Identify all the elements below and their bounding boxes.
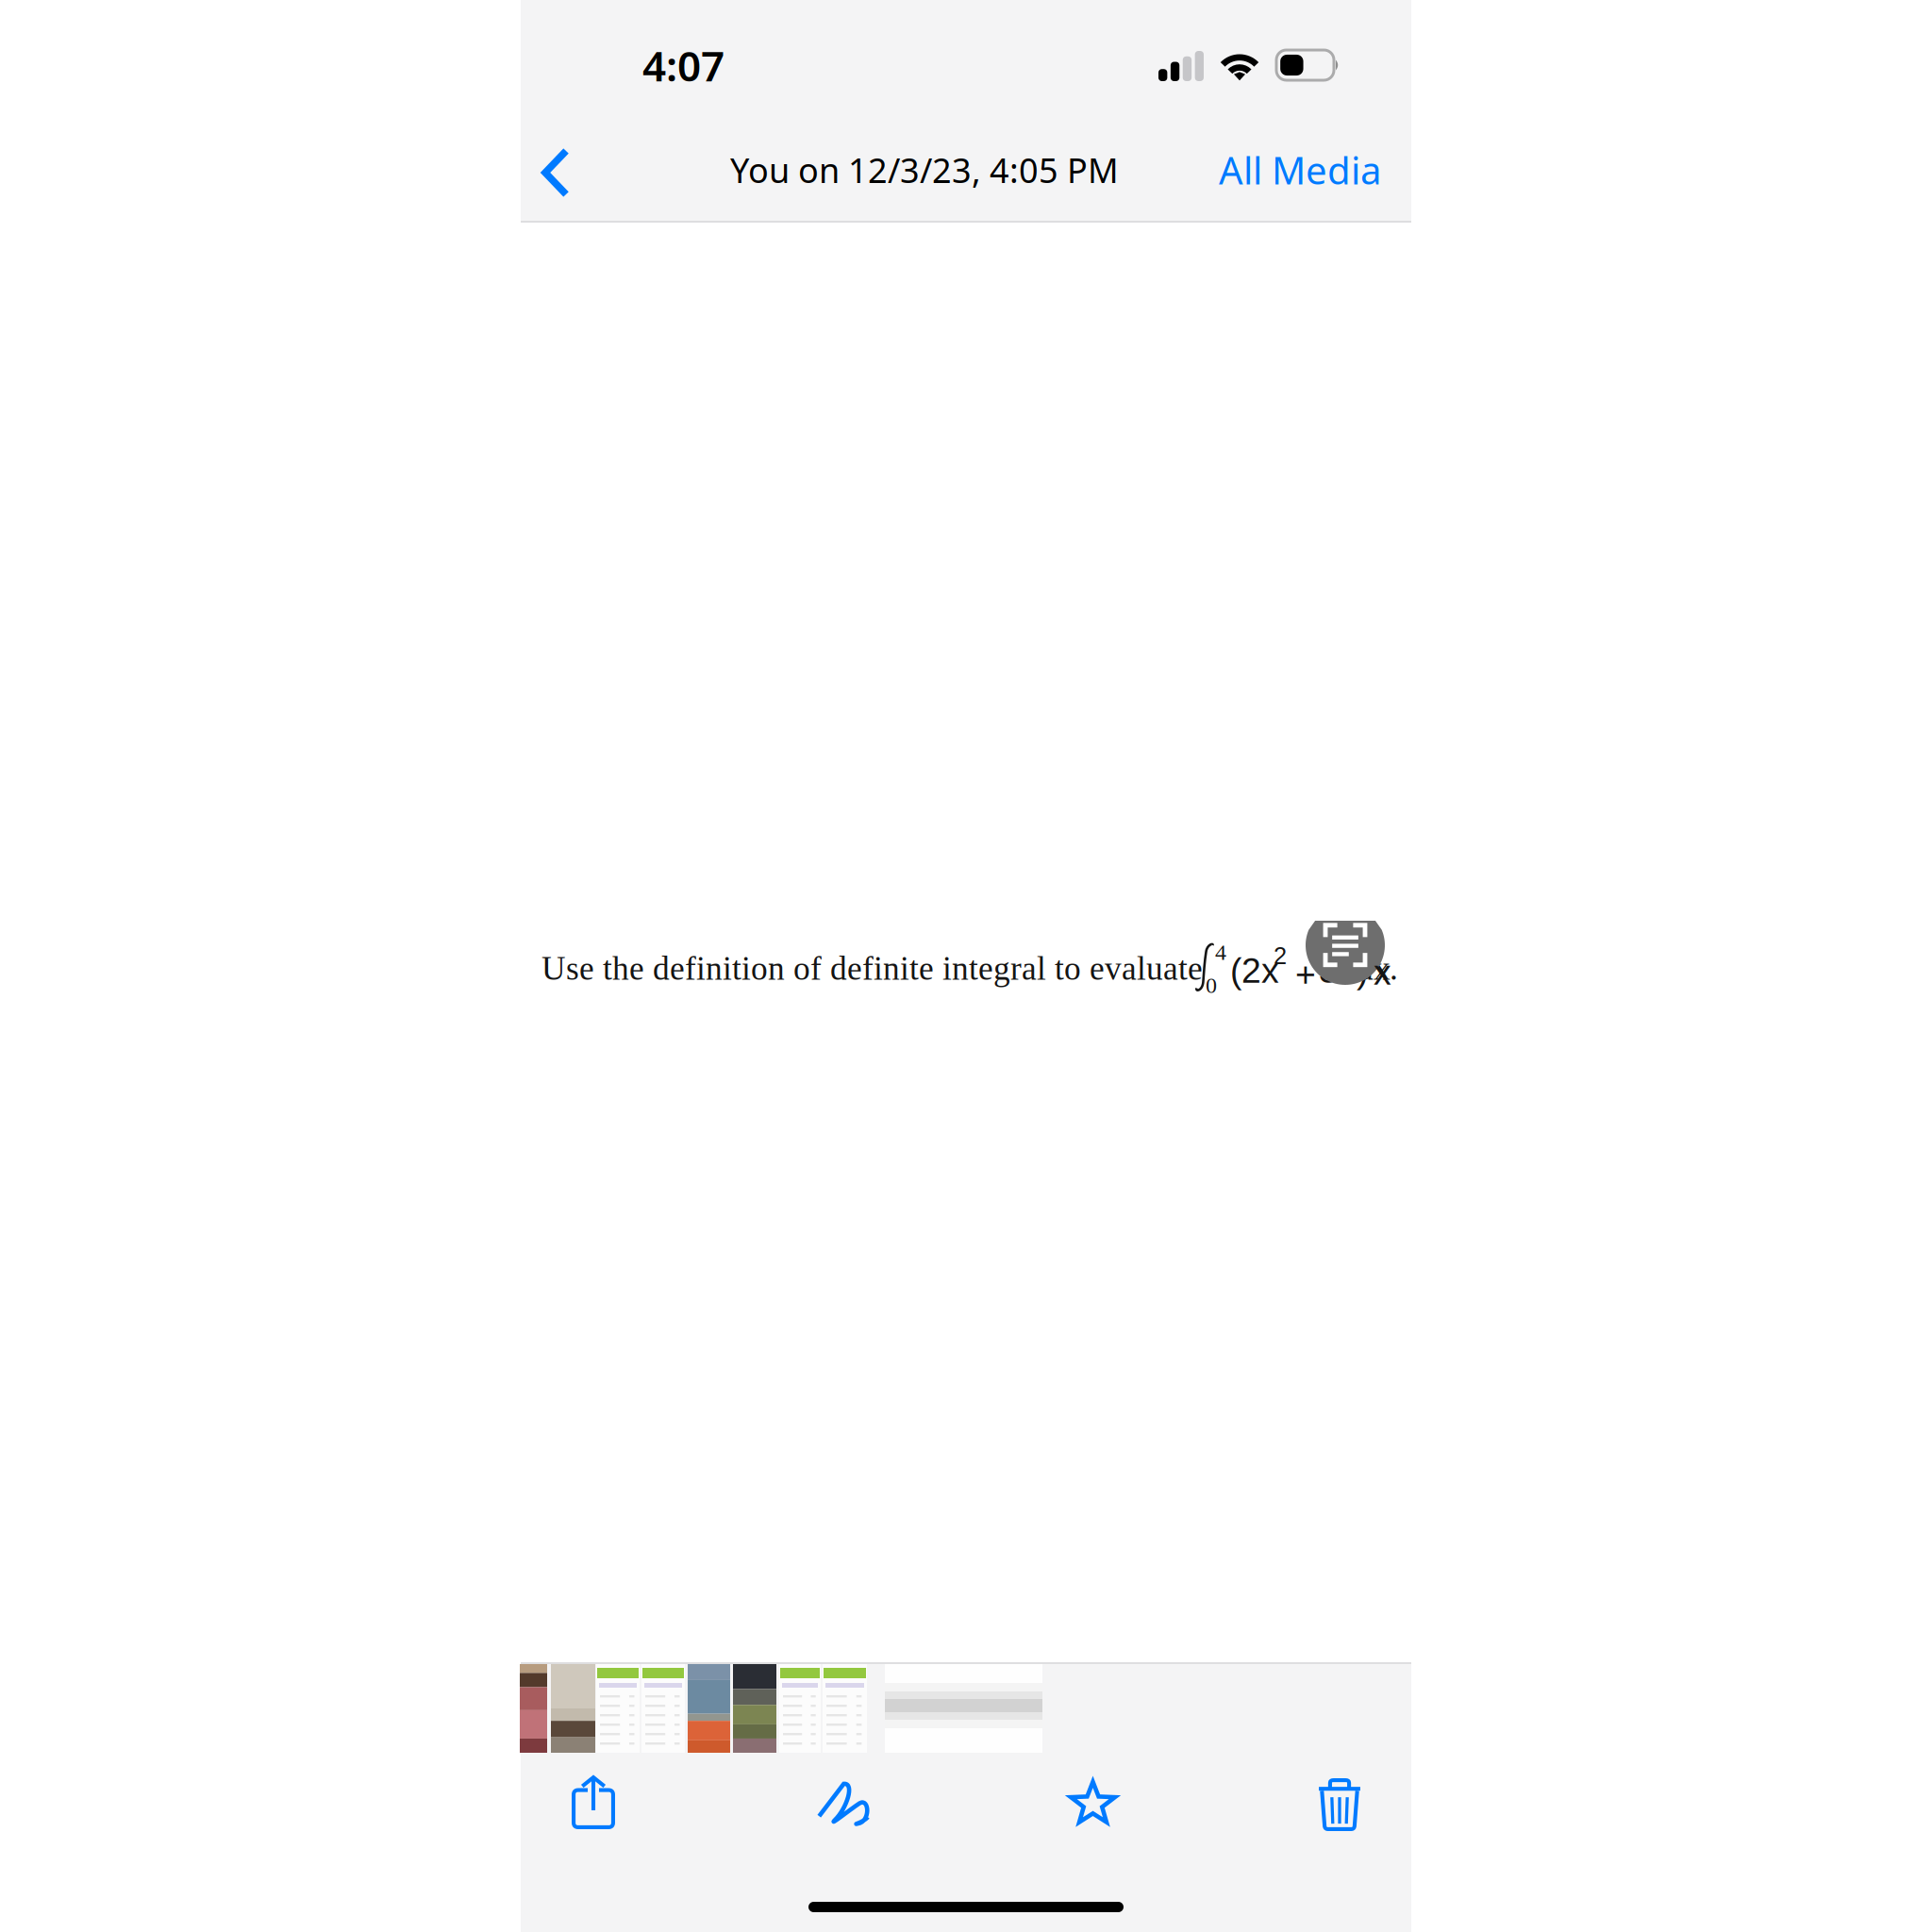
button[interactable]: Document 1 (596, 1664, 640, 1753)
button[interactable]: All Media (1183, 130, 1381, 209)
button[interactable]: Markup (774, 1754, 915, 1865)
button[interactable]: Document 3 (779, 1664, 821, 1753)
staticText: Use the definition of definite integral … (541, 950, 1203, 987)
button[interactable]: Photo 1 (520, 1664, 547, 1753)
button[interactable]: Photo 2 (551, 1664, 595, 1753)
staticText: . (1390, 950, 1398, 987)
button[interactable]: Selected photo (885, 1664, 1042, 1753)
button[interactable]: Back (523, 124, 613, 218)
button[interactable]: Favourite (1019, 1754, 1160, 1865)
staticText: You on 12/3/23, 4:05 PM (730, 147, 1119, 192)
staticText: 2 (1274, 942, 1287, 969)
staticText: dx (1357, 950, 1391, 987)
button[interactable]: Document 2 (641, 1664, 685, 1753)
staticText: 0 (1206, 973, 1217, 998)
staticText: 3x) (1319, 951, 1368, 990)
button[interactable]: Photo 4 (733, 1664, 776, 1753)
button[interactable]: Document 4 (823, 1664, 867, 1753)
staticText: 4:07 (642, 38, 724, 93)
staticText: All Media (1219, 145, 1381, 195)
button[interactable]: Photo 3 (688, 1664, 730, 1753)
staticText: + (1295, 955, 1316, 994)
button[interactable]: Delete (1267, 1754, 1408, 1865)
staticText: x (1374, 953, 1391, 992)
button[interactable]: Share (523, 1754, 664, 1865)
staticText: (2x (1230, 951, 1279, 990)
staticText: 4 (1215, 940, 1226, 965)
